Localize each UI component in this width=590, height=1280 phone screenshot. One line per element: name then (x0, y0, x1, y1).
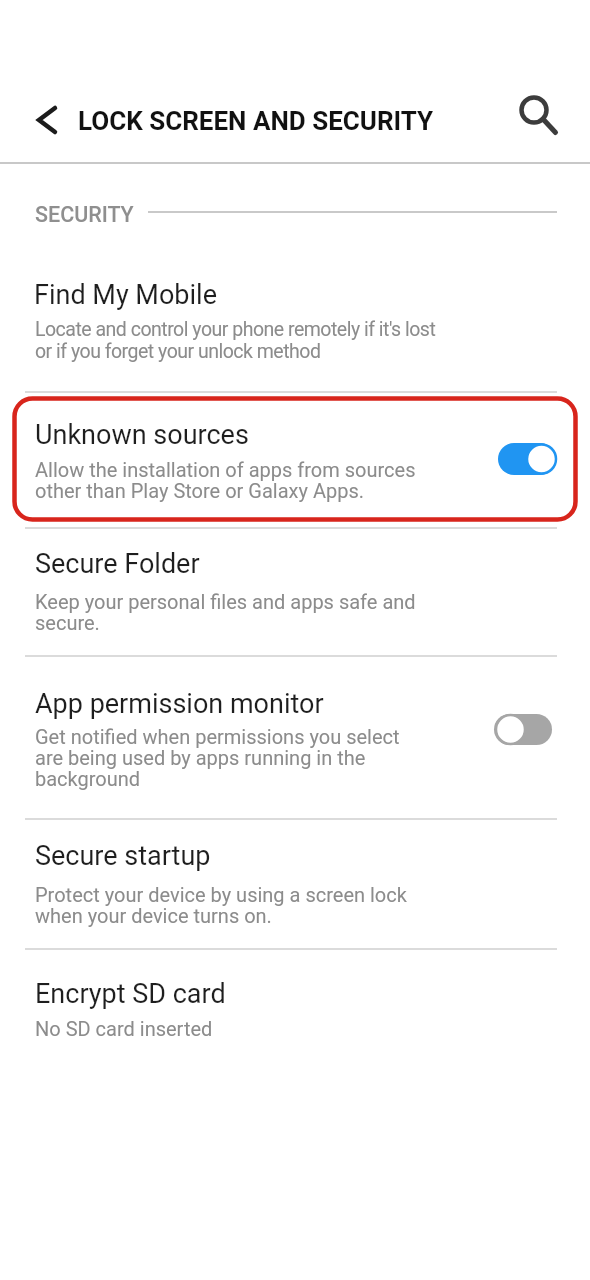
button[interactable]: Unknown sources (0, 392, 590, 527)
staticText: Encrypt SD card (35, 978, 226, 1010)
staticText: Unknown sources (35, 419, 249, 451)
staticText: Protect your device by using a screen lo… (35, 883, 407, 928)
button[interactable]: Encrypt SD card (0, 949, 590, 1079)
staticText: Find My Mobile (34, 279, 217, 311)
button[interactable]: Secure startup (0, 819, 590, 948)
staticText: App permission monitor (35, 688, 324, 720)
button[interactable] (510, 86, 560, 136)
staticText: LOCK SCREEN AND SECURITY (78, 106, 434, 136)
button[interactable]: Find My Mobile (0, 240, 590, 392)
staticText: Allow the installation of apps from sour… (35, 458, 416, 503)
button[interactable]: Secure Folder (0, 528, 590, 655)
staticText: No SD card inserted (35, 1017, 213, 1040)
staticText: Locate and control your phone remotely i… (35, 318, 436, 363)
staticText: Keep your personal files and apps safe a… (35, 590, 416, 635)
staticText: Secure startup (35, 840, 211, 872)
button[interactable] (496, 439, 562, 479)
staticText: Get notified when permissions you select… (35, 725, 400, 791)
button[interactable] (23, 96, 71, 144)
button[interactable] (492, 710, 558, 750)
staticText: SECURITY (35, 202, 134, 227)
button[interactable]: App permission monitor (0, 656, 590, 818)
staticText: Secure Folder (35, 548, 200, 580)
